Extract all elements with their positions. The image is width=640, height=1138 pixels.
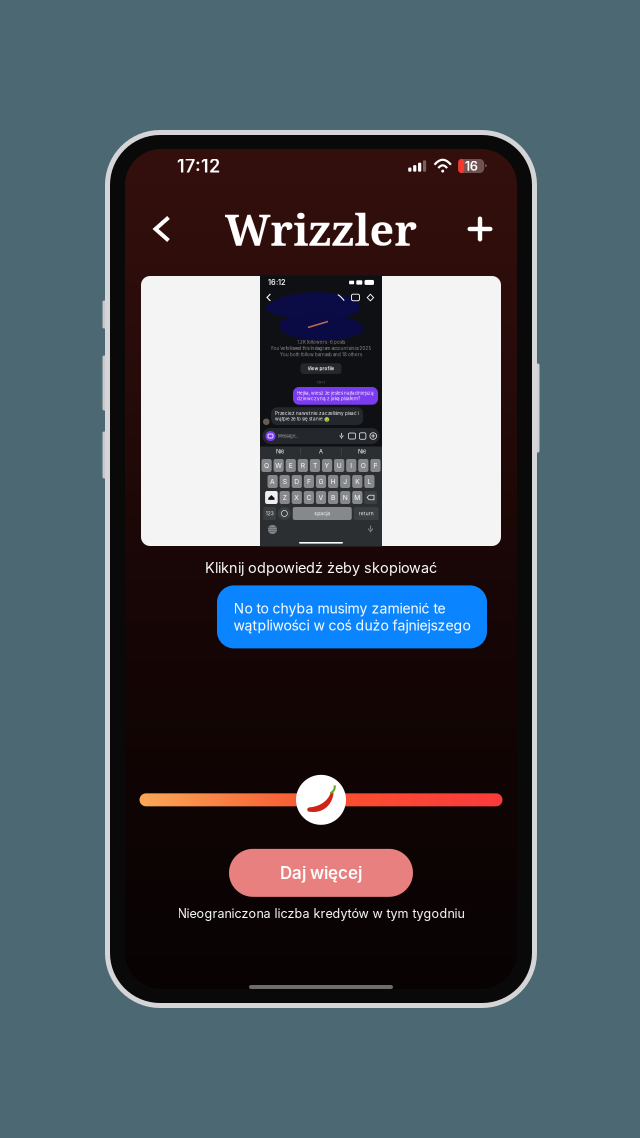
staticText: A — [270, 477, 275, 486]
staticText: 16 — [465, 158, 478, 174]
staticText: A — [319, 448, 323, 455]
button[interactable]: Daj więcej — [229, 849, 413, 897]
staticText: D — [294, 477, 299, 486]
staticText: Nieograniczona liczba kredytów w tym tyg… — [177, 906, 464, 921]
staticText: Q — [264, 461, 269, 470]
staticText: 17:12 — [177, 155, 220, 177]
staticText: U — [337, 461, 342, 470]
staticText: M — [354, 493, 360, 502]
staticText: E — [289, 461, 293, 470]
staticText: N — [343, 493, 348, 502]
staticText: C — [306, 493, 311, 502]
button[interactable]: Back — [137, 203, 187, 255]
staticText: H — [331, 477, 336, 486]
staticText: X — [294, 493, 299, 502]
staticText: No to chyba musimy zamienić te wątpliwoś… — [233, 600, 470, 634]
staticText: spacja — [314, 510, 330, 516]
staticText: Wrizzler — [224, 200, 417, 258]
staticText: 16:11 — [316, 380, 325, 384]
staticText: View profile — [307, 366, 334, 371]
staticText: Hejka, wiesz że jesteś najładniejszą dzi… — [297, 390, 374, 401]
staticText: V — [318, 493, 323, 502]
staticText: 123 — [266, 511, 274, 516]
staticText: 16:12 — [268, 278, 285, 287]
staticText: K — [355, 477, 359, 486]
staticText: S — [283, 477, 287, 486]
button[interactable]: No to chyba musimy zamienić te wątpliwoś… — [217, 585, 487, 648]
staticText: O — [361, 461, 366, 470]
staticText: You both follow barnasb and 18 others — [280, 352, 362, 357]
staticText: R — [301, 461, 305, 470]
staticText: T — [313, 461, 317, 470]
staticText: Daj więcej — [280, 863, 362, 883]
staticText: P — [373, 461, 377, 470]
staticText: I — [350, 461, 352, 470]
staticText: Y — [325, 461, 330, 470]
button[interactable]: Add — [455, 203, 505, 255]
staticText: F — [307, 477, 311, 486]
staticText: B — [331, 493, 335, 502]
staticText: Z — [283, 493, 287, 502]
staticText: J — [343, 477, 347, 486]
staticText: W — [275, 461, 282, 470]
staticText: 1.2K followers · 6 posts — [297, 339, 345, 345]
staticText: You've followed this Instagram account s… — [270, 346, 371, 351]
staticText: return — [359, 511, 374, 516]
staticText: Nie — [358, 448, 366, 455]
staticText: L — [367, 477, 371, 486]
staticText: Message... — [278, 433, 298, 439]
staticText: Nie — [276, 448, 284, 455]
staticText: Przecież nawet nie zaczeliśmy pisać i wą… — [275, 411, 359, 422]
staticText: G — [318, 477, 323, 486]
staticText: Kliknij odpowiedź żeby skopiować — [205, 559, 437, 576]
